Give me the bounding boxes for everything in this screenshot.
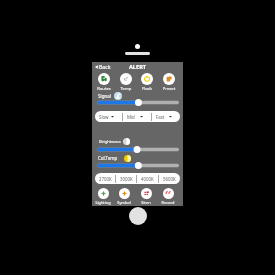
staticText: Slow — [99, 114, 109, 120]
button[interactable]: Mid — [123, 111, 151, 122]
button[interactable]: Slider — [97, 161, 179, 170]
button[interactable]: Back — [95, 63, 111, 70]
staticText: 2700K — [99, 176, 112, 182]
button[interactable]: 5600K — [159, 173, 180, 184]
staticText: Record — [157, 200, 179, 205]
staticText: Mid — [127, 114, 135, 120]
staticText: Temp — [115, 86, 137, 92]
button[interactable]: Slider — [97, 145, 179, 154]
staticText: Symbol — [113, 200, 135, 205]
staticText: Signal — [98, 93, 111, 99]
staticText: 4000K — [141, 176, 154, 182]
staticText: Brightness — [99, 138, 121, 144]
staticText: Flash — [136, 86, 158, 92]
staticText: 5600K — [163, 176, 176, 182]
staticText: Preset — [158, 86, 180, 92]
button[interactable]: 2700K — [95, 173, 115, 184]
button[interactable]: Routes — [93, 73, 115, 92]
staticText: Fast — [156, 114, 165, 120]
button[interactable]: Symbol — [113, 188, 135, 205]
button[interactable]: Preset — [158, 73, 180, 92]
staticText: Lighting — [92, 200, 114, 205]
staticText: Back — [99, 63, 111, 70]
button[interactable]: 4000K — [137, 173, 158, 184]
button[interactable]: Record — [157, 188, 179, 205]
button[interactable]: Slow — [95, 111, 122, 122]
button[interactable]: Flash — [136, 73, 158, 92]
button[interactable]: Siren — [135, 188, 157, 205]
staticText: 3000K — [120, 176, 133, 182]
button[interactable]: Lighting — [92, 188, 114, 205]
staticText: Col.Temp — [98, 155, 118, 161]
staticText: Siren — [135, 200, 157, 205]
staticText: ALERT — [129, 63, 147, 71]
button[interactable]: Slider — [97, 98, 179, 107]
staticText: Routes — [93, 86, 115, 92]
button[interactable]: Fast — [152, 111, 180, 122]
button[interactable]: Temperature — [115, 73, 137, 92]
button[interactable]: 3000K — [116, 173, 136, 184]
